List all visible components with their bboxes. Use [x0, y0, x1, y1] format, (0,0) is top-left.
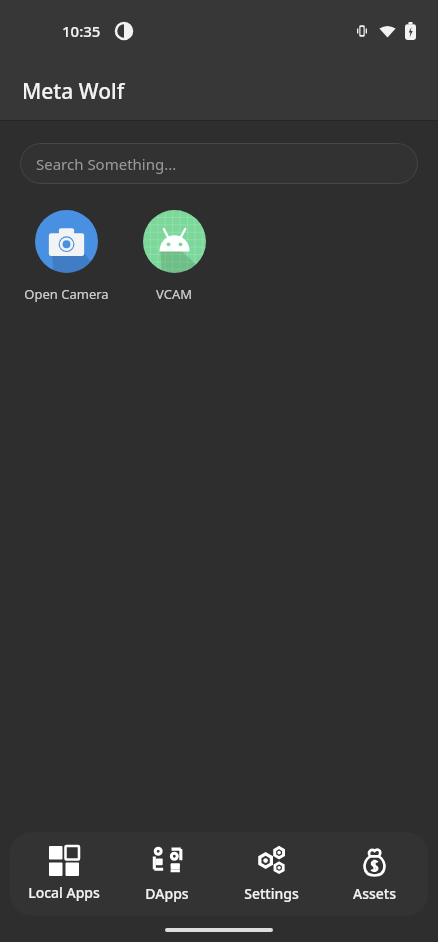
button[interactable]: Open Camera	[12, 206, 120, 307]
other: DApps	[152, 846, 183, 877]
staticText: DApps	[145, 884, 189, 903]
other: Local Apps	[49, 846, 79, 876]
staticText: Assets	[353, 884, 396, 903]
button[interactable]: Search Something...	[20, 143, 418, 184]
staticText: 10:35	[62, 21, 101, 41]
staticText: VCAM	[156, 285, 192, 303]
staticText: Local Apps	[28, 883, 100, 902]
staticText: Meta Wolf	[22, 77, 125, 106]
other: Settings	[256, 846, 287, 877]
other: Assets	[359, 846, 390, 877]
button[interactable]: Settings	[222, 840, 320, 909]
button[interactable]: Local Apps	[15, 840, 113, 908]
staticText: Search Something...	[36, 154, 177, 174]
staticText: Open Camera	[24, 285, 109, 303]
button[interactable]: VCAM	[120, 206, 228, 307]
button[interactable]: DApps	[118, 840, 216, 909]
staticText: Settings	[244, 884, 299, 903]
button[interactable]: Assets	[325, 840, 423, 909]
